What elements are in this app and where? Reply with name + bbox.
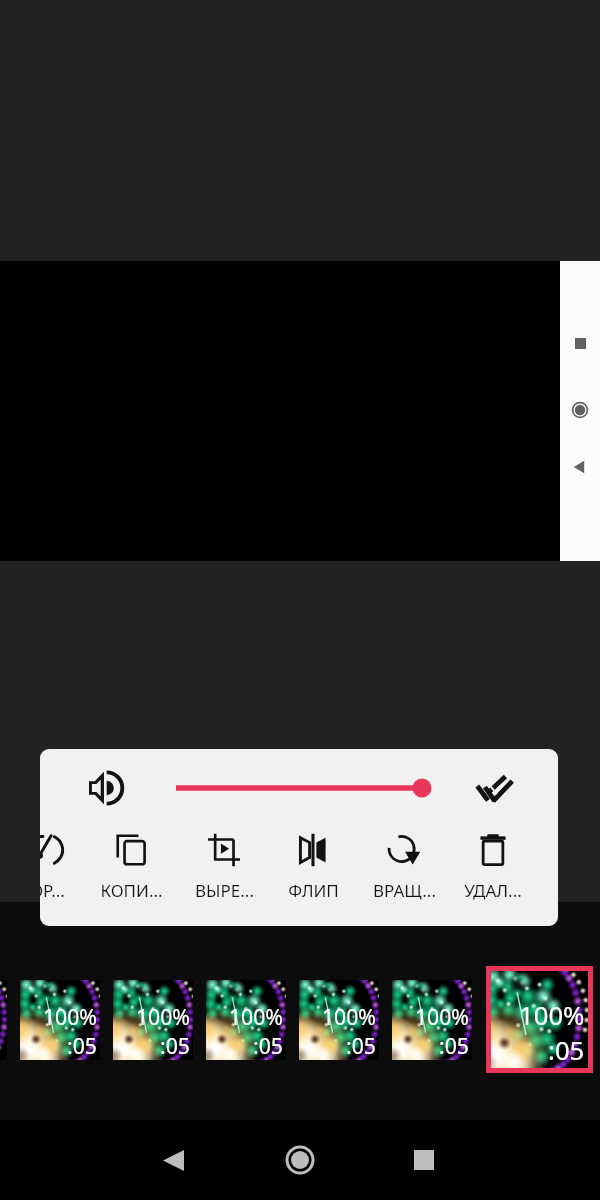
button[interactable]: Home [270, 1130, 330, 1190]
staticText: :05 [67, 1031, 97, 1060]
staticText: 100% [229, 1002, 283, 1031]
staticText: :05 [160, 1031, 190, 1060]
button[interactable]: Volume [85, 767, 127, 809]
button[interactable]: УДАЛ... [448, 833, 538, 902]
staticText: ФЛИП [288, 879, 339, 902]
staticText: :05 [548, 1033, 585, 1068]
button[interactable]: Recents [570, 333, 590, 353]
staticText: ОР... [40, 879, 65, 902]
button[interactable]: Volume slider [164, 776, 444, 800]
button[interactable]: Done [471, 767, 515, 811]
button[interactable]: КОПИ... [86, 833, 176, 902]
button[interactable]: 100% [491, 971, 588, 1068]
staticText: 100% [322, 1002, 376, 1031]
staticText: :05 [439, 1031, 469, 1060]
staticText: :05 [346, 1031, 376, 1060]
button[interactable]: 100% [392, 980, 472, 1060]
button[interactable]: ВЫРЕ... [179, 833, 269, 902]
button[interactable]: 100% [206, 980, 286, 1060]
staticText: ВРАЩ... [373, 879, 436, 902]
button[interactable]: 100% [299, 980, 379, 1060]
staticText: 100% [136, 1002, 190, 1031]
staticText: :05 [253, 1031, 283, 1060]
button[interactable]: 100% [113, 980, 193, 1060]
button[interactable]: ВРАЩ... [359, 833, 449, 902]
button[interactable]: Back [570, 457, 590, 477]
staticText: ВЫРЕ... [195, 879, 254, 902]
button[interactable]: ОР... [40, 833, 92, 902]
staticText: 100% [43, 1002, 97, 1031]
staticText: 100% [415, 1002, 469, 1031]
button[interactable]: Recents [394, 1130, 454, 1190]
button[interactable]: 100% [20, 980, 100, 1060]
staticText: КОПИ... [100, 879, 163, 902]
button[interactable]: ФЛИП [268, 833, 358, 902]
button[interactable]: Back [143, 1130, 203, 1190]
button[interactable]: Home [570, 400, 590, 420]
staticText: 100% [519, 998, 585, 1033]
staticText: УДАЛ... [464, 879, 522, 902]
